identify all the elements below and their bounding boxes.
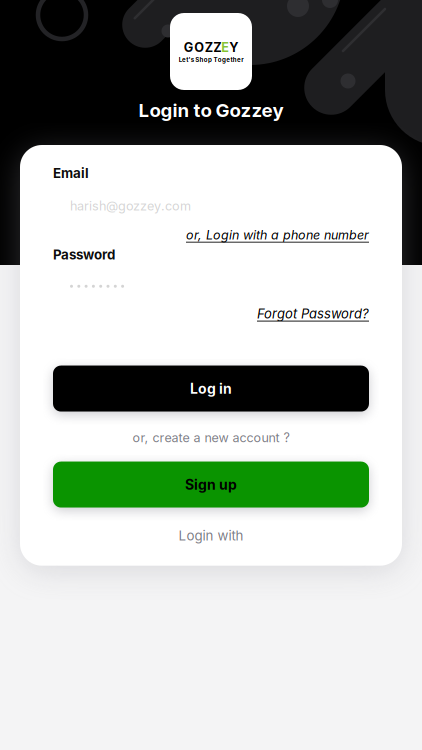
staticText: harish@gozzey.com: [70, 198, 191, 213]
button[interactable]: Forgot Password?: [257, 306, 369, 322]
button[interactable]: or, Login with a phone number: [186, 227, 369, 243]
staticText: or, Login with a phone number: [186, 227, 369, 243]
button[interactable]: or, create a new account ?: [53, 427, 369, 449]
staticText: Sign up: [185, 476, 237, 493]
button[interactable]: Login with: [53, 528, 369, 544]
staticText: E: [221, 40, 229, 55]
button[interactable]: Log in: [53, 366, 369, 412]
button[interactable]: Sign up: [53, 462, 369, 508]
staticText: Y: [229, 40, 238, 55]
staticText: Login with: [178, 528, 243, 544]
staticText: Email: [53, 165, 89, 181]
staticText: Log in: [190, 380, 232, 397]
staticText: or, create a new account ?: [132, 430, 289, 445]
staticText: GOZZ: [184, 40, 221, 55]
staticText: Password: [53, 247, 115, 263]
staticText: Login to Gozzey: [138, 99, 283, 122]
staticText: Forgot Password?: [257, 306, 369, 322]
staticText: Let's Shop Together: [179, 56, 243, 63]
